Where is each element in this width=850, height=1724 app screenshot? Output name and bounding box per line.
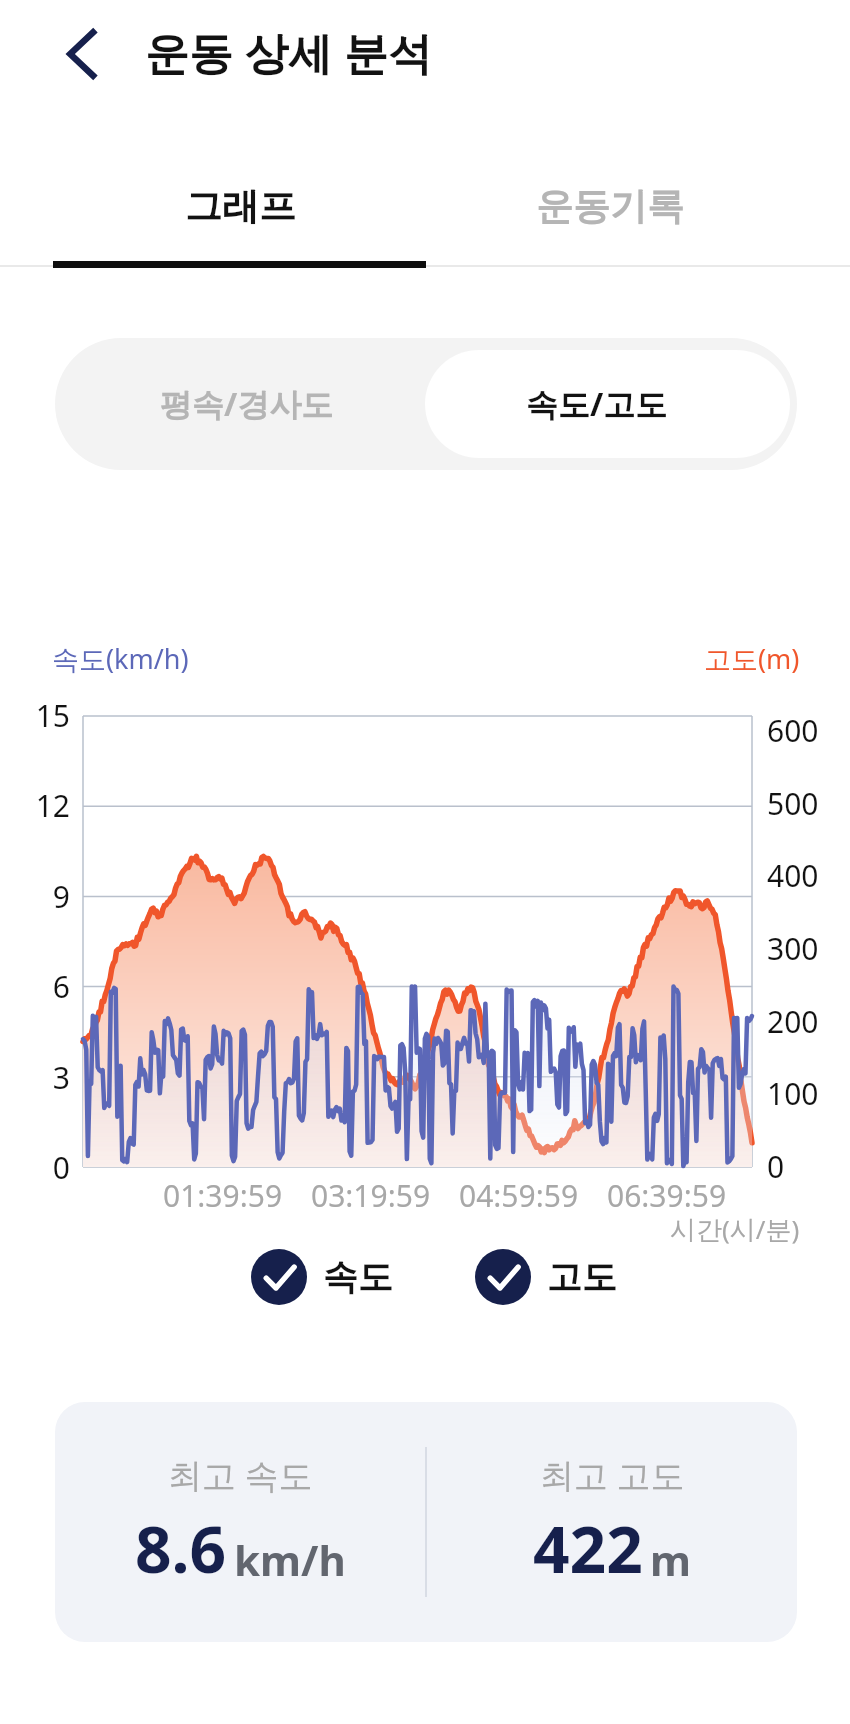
staticText: 600	[767, 710, 819, 751]
staticText: 15	[35, 695, 70, 736]
staticText: 3	[52, 1057, 70, 1098]
staticText: 9	[52, 876, 70, 917]
staticText: 8.6	[135, 1505, 227, 1592]
staticText: 400	[767, 855, 819, 896]
staticText: 시간(시/분)	[670, 1211, 800, 1247]
staticText: 500	[767, 783, 819, 824]
button[interactable]: 속도	[251, 1249, 393, 1305]
button[interactable]: 운동기록	[425, 160, 795, 252]
button[interactable]: Back	[40, 12, 124, 96]
staticText: 운동기록	[536, 183, 684, 230]
staticText: 01:39:59	[163, 1175, 283, 1216]
button[interactable]: 평속/경사도	[55, 338, 425, 470]
staticText: 6	[52, 966, 70, 1007]
staticText: 0	[767, 1146, 785, 1187]
staticText: m	[650, 1531, 691, 1588]
staticText: 고도	[547, 1255, 617, 1299]
staticText: 고도(m)	[704, 640, 800, 677]
staticText: 422	[533, 1505, 643, 1592]
button[interactable]: 속도/고도	[425, 350, 790, 458]
staticText: 운동 상세 분석	[145, 22, 432, 82]
staticText: 06:39:59	[607, 1175, 727, 1216]
staticText: 0	[52, 1147, 70, 1188]
staticText: 04:59:59	[459, 1175, 579, 1216]
staticText: 속도/고도	[526, 382, 668, 426]
staticText: 12	[35, 785, 70, 826]
button[interactable]: 그래프	[0, 160, 480, 252]
staticText: km/h	[234, 1531, 346, 1588]
staticText: 300	[767, 928, 819, 969]
staticText: 100	[767, 1073, 819, 1114]
staticText: 평속/경사도	[160, 382, 334, 426]
button[interactable]: 고도	[475, 1249, 617, 1305]
staticText: 최고 속도	[168, 1452, 313, 1498]
staticText: 속도	[323, 1255, 393, 1299]
staticText: 속도(km/h)	[52, 640, 189, 677]
staticText: 최고 고도	[540, 1452, 685, 1498]
staticText: 200	[767, 1001, 819, 1042]
staticText: 03:19:59	[311, 1175, 431, 1216]
staticText: 그래프	[185, 183, 296, 230]
